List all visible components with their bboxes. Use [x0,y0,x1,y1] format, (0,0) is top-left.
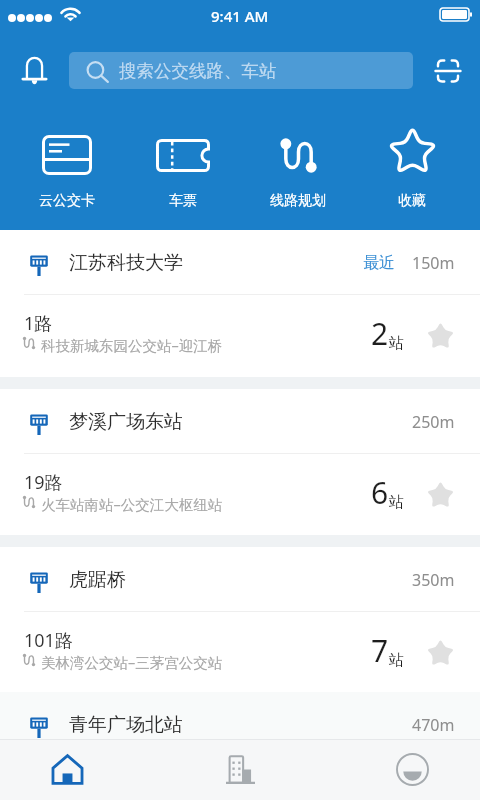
staticText: 2 [371,313,389,354]
staticText: 站 [389,651,404,670]
staticText: 站 [389,493,404,512]
staticText: 火车站南站–公交江大枢纽站 [41,494,223,514]
staticText: 美林湾公交站–三茅宫公交站 [41,652,223,672]
button[interactable]: Nearby [200,739,280,800]
staticText: 350m [412,569,455,591]
staticText: 470m [412,714,455,736]
button[interactable]: 虎踞桥 [0,547,480,611]
staticText: 线路规划 [270,192,326,210]
staticText: 101路 [24,628,73,653]
staticText: 9:41 AM [211,6,269,26]
button[interactable]: 青年广场北站 [0,692,480,739]
button[interactable]: 江苏科技大学 [0,230,480,294]
button[interactable]: 收藏 [368,122,456,216]
staticText: 青年广场北站 [69,713,183,737]
staticText: 江苏科技大学 [69,251,183,275]
button[interactable]: 梦溪广场东站 [0,389,480,453]
staticText: 梦溪广场东站 [69,410,183,434]
staticText: 收藏 [398,192,426,210]
button[interactable]: 车票 [139,122,227,216]
staticText: 7 [371,630,389,671]
staticText: 虎踞桥 [69,568,126,592]
staticText: 站 [389,334,404,353]
staticText: 1路 [24,311,53,336]
button[interactable]: 19路 [0,454,480,536]
button[interactable]: 线路规划 [254,122,342,216]
staticText: 搜索公交线路、车站 [119,60,277,82]
button[interactable]: Notifications [12,45,57,90]
button[interactable]: Profile [372,739,452,800]
button[interactable]: 搜索公交线路、车站 [69,52,413,89]
button[interactable]: 101路 [0,612,480,694]
staticText: 最近 [363,253,395,273]
staticText: 云公交卡 [39,192,95,210]
staticText: 科技新城东园公交站–迎江桥 [41,335,223,355]
staticText: 19路 [24,470,63,495]
staticText: 250m [412,411,455,433]
button[interactable]: 云公交卡 [23,122,111,216]
button[interactable]: Scan QR code [425,48,470,93]
button[interactable]: Home [27,739,107,800]
staticText: 车票 [169,192,197,210]
button[interactable]: 1路 [0,295,480,377]
staticText: 6 [371,472,389,513]
staticText: 150m [412,252,455,274]
